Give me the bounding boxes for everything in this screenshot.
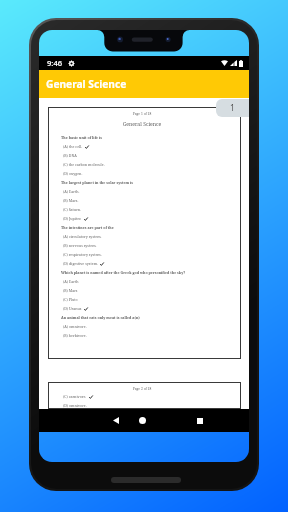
button[interactable]: General Science	[39, 70, 249, 98]
staticText: (B) DNA	[63, 153, 77, 158]
staticText: (C) Pluto	[63, 297, 78, 302]
staticText: Which planet is named after the Greek go…	[61, 270, 186, 275]
staticText: (D) omnivore.	[63, 403, 87, 408]
staticText: General Science	[46, 77, 127, 91]
staticText: An animal that eats only meat is called …	[61, 315, 140, 320]
staticText: (D) Jupiter.	[63, 216, 82, 221]
button[interactable]: Back	[72, 409, 119, 432]
staticText: Page 2 of 18	[56, 386, 228, 390]
staticText: Page 1 of 18	[56, 111, 228, 115]
staticText: 1	[230, 102, 235, 114]
staticText: (A) omnivore.	[63, 324, 87, 329]
staticText: (A) Earth.	[63, 189, 80, 194]
staticText: (A) circulatory system.	[63, 234, 102, 239]
staticText: (D) oxygen.	[63, 171, 83, 176]
staticText: (C) Saturn.	[63, 207, 82, 212]
staticText: (D) digestive system.	[63, 261, 98, 266]
staticText: (C) respiratory system.	[63, 252, 102, 257]
staticText: (B) herbivore.	[63, 333, 87, 338]
staticText: (A) the cell.	[63, 144, 83, 149]
staticText: (B) Mars.	[63, 198, 79, 203]
staticText: (D) Uranus	[63, 306, 82, 311]
staticText: (B) nervous system.	[63, 243, 97, 248]
staticText: 9:46	[47, 58, 63, 68]
staticText: The basic unit of life is	[61, 135, 103, 140]
button[interactable]: Recents	[189, 409, 211, 432]
other: Settings	[68, 60, 75, 67]
staticText: The largest planet in the solar system i…	[61, 180, 133, 185]
staticText: General Science	[56, 121, 228, 128]
staticText: (C) the carbon molecule.	[63, 162, 105, 167]
staticText: (A) Earth	[63, 279, 79, 284]
staticText: (C) carnivore.	[63, 394, 87, 399]
button[interactable]: 1	[216, 99, 249, 117]
staticText: (B) Mars	[63, 288, 78, 293]
staticText: The intestines are part of the	[61, 225, 114, 230]
button[interactable]: Home	[131, 409, 153, 432]
